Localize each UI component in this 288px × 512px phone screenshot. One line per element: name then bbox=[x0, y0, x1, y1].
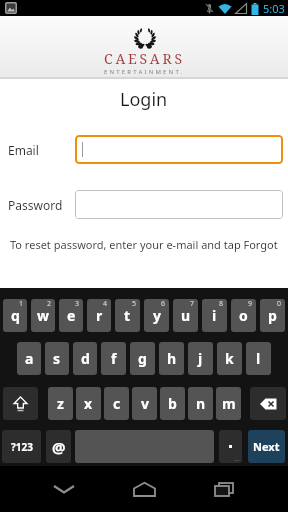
staticText: 5:03 bbox=[263, 1, 285, 16]
button[interactable] bbox=[3, 387, 38, 420]
staticText: 8 bbox=[219, 299, 224, 309]
button[interactable]: r bbox=[87, 299, 111, 332]
button[interactable]: d bbox=[73, 342, 97, 375]
staticText: k bbox=[225, 349, 234, 368]
staticText: s bbox=[53, 349, 61, 368]
staticText: 2 bbox=[47, 299, 52, 309]
button[interactable]: o bbox=[231, 299, 256, 332]
button[interactable]: x bbox=[76, 387, 101, 420]
button[interactable]: l bbox=[246, 342, 271, 375]
button[interactable]: w bbox=[31, 299, 55, 332]
staticText: h bbox=[167, 349, 177, 368]
staticText: a bbox=[25, 349, 34, 368]
button[interactable]: p bbox=[260, 299, 285, 332]
button[interactable] bbox=[104, 466, 184, 512]
staticText: 9 bbox=[248, 299, 253, 309]
staticText: r bbox=[96, 306, 103, 325]
staticText: 6 bbox=[161, 299, 166, 309]
button[interactable]: i bbox=[202, 299, 227, 332]
button[interactable]: m bbox=[216, 387, 241, 420]
staticText: m bbox=[222, 394, 236, 413]
staticText: To reset password, enter your e-mail and… bbox=[10, 237, 278, 252]
staticText: 0 bbox=[277, 299, 282, 309]
staticText: ?123 bbox=[11, 440, 33, 454]
staticText: o bbox=[239, 306, 248, 325]
staticText: 7 bbox=[190, 299, 195, 309]
staticText: @ bbox=[52, 437, 66, 457]
staticText: q bbox=[11, 306, 20, 325]
button[interactable]: v bbox=[132, 387, 157, 420]
staticText: x bbox=[84, 394, 93, 413]
button[interactable] bbox=[24, 466, 104, 512]
button[interactable] bbox=[75, 135, 283, 164]
button[interactable]: h bbox=[159, 342, 184, 375]
button[interactable]: @ bbox=[46, 430, 71, 463]
staticText: n bbox=[196, 394, 206, 413]
staticText: d bbox=[81, 349, 90, 368]
staticText: CAESARS bbox=[104, 49, 185, 68]
staticText: Email bbox=[8, 142, 39, 158]
button[interactable]: b bbox=[160, 387, 185, 420]
staticText: y bbox=[153, 306, 161, 325]
staticText: ENTERTAINMENT. bbox=[104, 68, 185, 76]
button[interactable]: z bbox=[48, 387, 73, 420]
staticText: e bbox=[67, 306, 76, 325]
staticText: 5 bbox=[132, 299, 137, 309]
staticText: Login bbox=[120, 87, 168, 112]
button[interactable]: g bbox=[130, 342, 155, 375]
button[interactable]: n bbox=[188, 387, 213, 420]
button[interactable]: j bbox=[188, 342, 213, 375]
button[interactable]: a bbox=[17, 342, 41, 375]
staticText: w bbox=[37, 306, 49, 325]
button[interactable]: t bbox=[115, 299, 140, 332]
staticText: c bbox=[113, 394, 121, 413]
staticText: 1 bbox=[19, 299, 24, 309]
staticText: i bbox=[212, 306, 217, 325]
button[interactable]: y bbox=[144, 299, 169, 332]
button[interactable]: Next bbox=[248, 430, 285, 463]
button[interactable]: k bbox=[217, 342, 242, 375]
button[interactable]: s bbox=[45, 342, 69, 375]
button[interactable]: u bbox=[173, 299, 198, 332]
button[interactable]: e bbox=[59, 299, 83, 332]
button[interactable]: ... bbox=[219, 430, 242, 463]
button[interactable] bbox=[75, 190, 283, 219]
button[interactable]: f bbox=[101, 342, 126, 375]
staticText: t bbox=[124, 306, 131, 325]
button[interactable]: ?123 bbox=[2, 430, 41, 463]
staticText: 3 bbox=[75, 299, 80, 309]
staticText: Password bbox=[8, 197, 63, 213]
staticText: u bbox=[181, 306, 191, 325]
button[interactable] bbox=[184, 466, 264, 512]
staticText: g bbox=[138, 349, 147, 368]
staticText: z bbox=[57, 394, 64, 413]
staticText: v bbox=[141, 394, 149, 413]
staticText: f bbox=[111, 349, 117, 368]
staticText: p bbox=[268, 306, 277, 325]
staticText: ... bbox=[235, 456, 240, 463]
staticText: Next bbox=[253, 439, 280, 454]
staticText: j bbox=[198, 349, 203, 368]
staticText: b bbox=[168, 394, 177, 413]
button[interactable]: q bbox=[3, 299, 27, 332]
button[interactable]: c bbox=[104, 387, 129, 420]
staticText: 4 bbox=[103, 299, 108, 309]
staticText: l bbox=[256, 349, 261, 368]
button[interactable] bbox=[250, 387, 286, 420]
